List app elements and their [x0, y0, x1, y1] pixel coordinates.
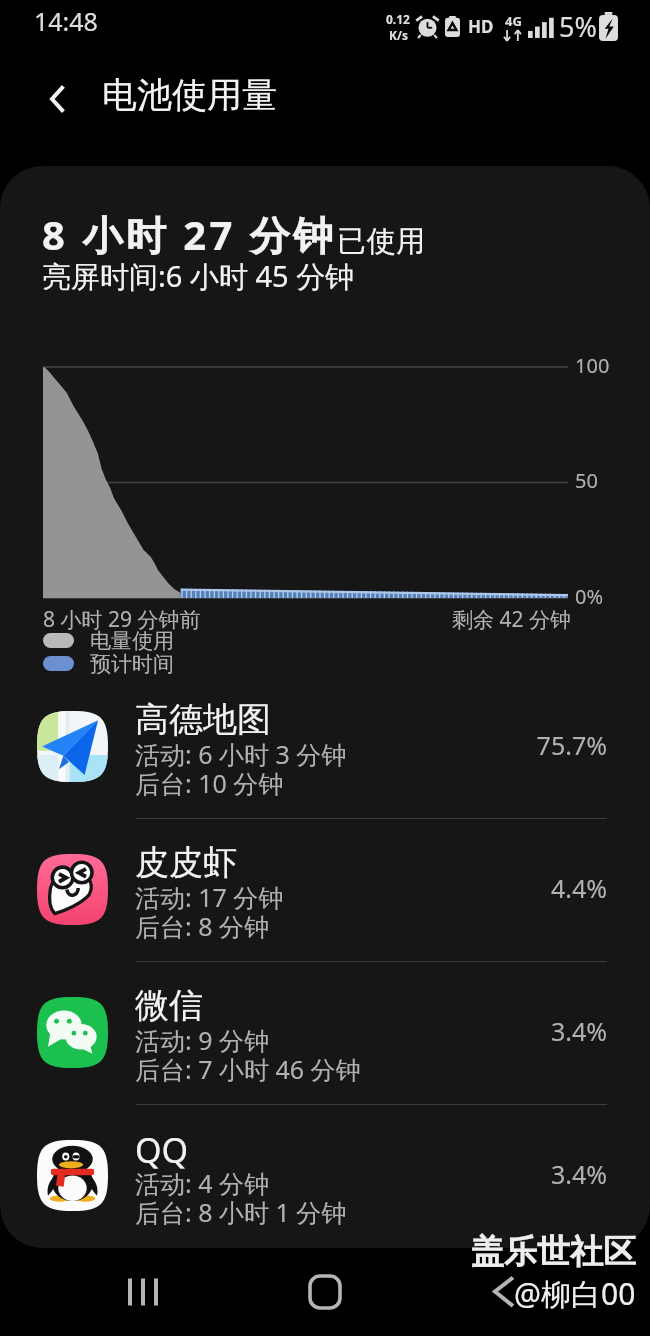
staticText: 后台: 8 小时 1 分钟 [135, 1195, 347, 1229]
staticText: K/s [389, 27, 408, 43]
staticText: 后台: 10 分钟 [135, 766, 284, 800]
button[interactable]: Home [287, 1254, 363, 1330]
staticText: 100 [575, 352, 610, 379]
staticText: 8 小时 27 分钟 [42, 207, 337, 262]
staticText: 75.7% [437, 728, 607, 762]
staticText: 高德地图 [135, 698, 271, 741]
staticText: 已使用 [337, 223, 426, 260]
staticText: QQ [135, 1127, 189, 1173]
button[interactable]: QQ [0, 1104, 650, 1247]
staticText: 剩余 42 分钟 [452, 605, 571, 634]
button[interactable]: Recent apps [106, 1254, 182, 1330]
staticText: 盖乐世社区 [471, 1231, 636, 1273]
staticText: 亮屏时间:6 小时 45 分钟 [42, 256, 355, 296]
button[interactable]: Back [30, 71, 86, 127]
staticText: 后台: 8 分钟 [135, 909, 270, 943]
staticText: 0% [575, 583, 604, 610]
staticText: 皮皮虾 [135, 841, 237, 884]
staticText: HD [468, 15, 494, 38]
button[interactable]: 微信 [0, 961, 650, 1104]
staticText: 50 [575, 467, 598, 494]
staticText: 14:48 [34, 4, 98, 38]
staticText: 0.12 [386, 11, 410, 27]
button[interactable]: 高德地图 [0, 675, 650, 818]
staticText: 5% [559, 8, 597, 45]
staticText: 4G [505, 12, 522, 30]
button[interactable]: Back [469, 1254, 545, 1330]
staticText: 8 小时 29 分钟前 [43, 605, 201, 634]
staticText: @柳白00 [514, 1273, 636, 1314]
staticText: 微信 [135, 984, 203, 1027]
staticText: 3.4% [437, 1014, 607, 1048]
staticText: 3.4% [437, 1157, 607, 1191]
staticText: 电量使用 [90, 628, 174, 654]
staticText: 预计时间 [90, 651, 174, 677]
staticText: 活动: 4 分钟 [135, 1166, 270, 1200]
staticText: 4.4% [437, 871, 607, 905]
staticText: 活动: 9 分钟 [135, 1023, 270, 1057]
staticText: 电池使用量 [102, 73, 277, 117]
staticText: 活动: 6 小时 3 分钟 [135, 737, 347, 771]
staticText: 活动: 17 分钟 [135, 880, 284, 914]
staticText: 后台: 7 小时 46 分钟 [135, 1052, 361, 1086]
button[interactable]: 皮皮虾 [0, 818, 650, 961]
